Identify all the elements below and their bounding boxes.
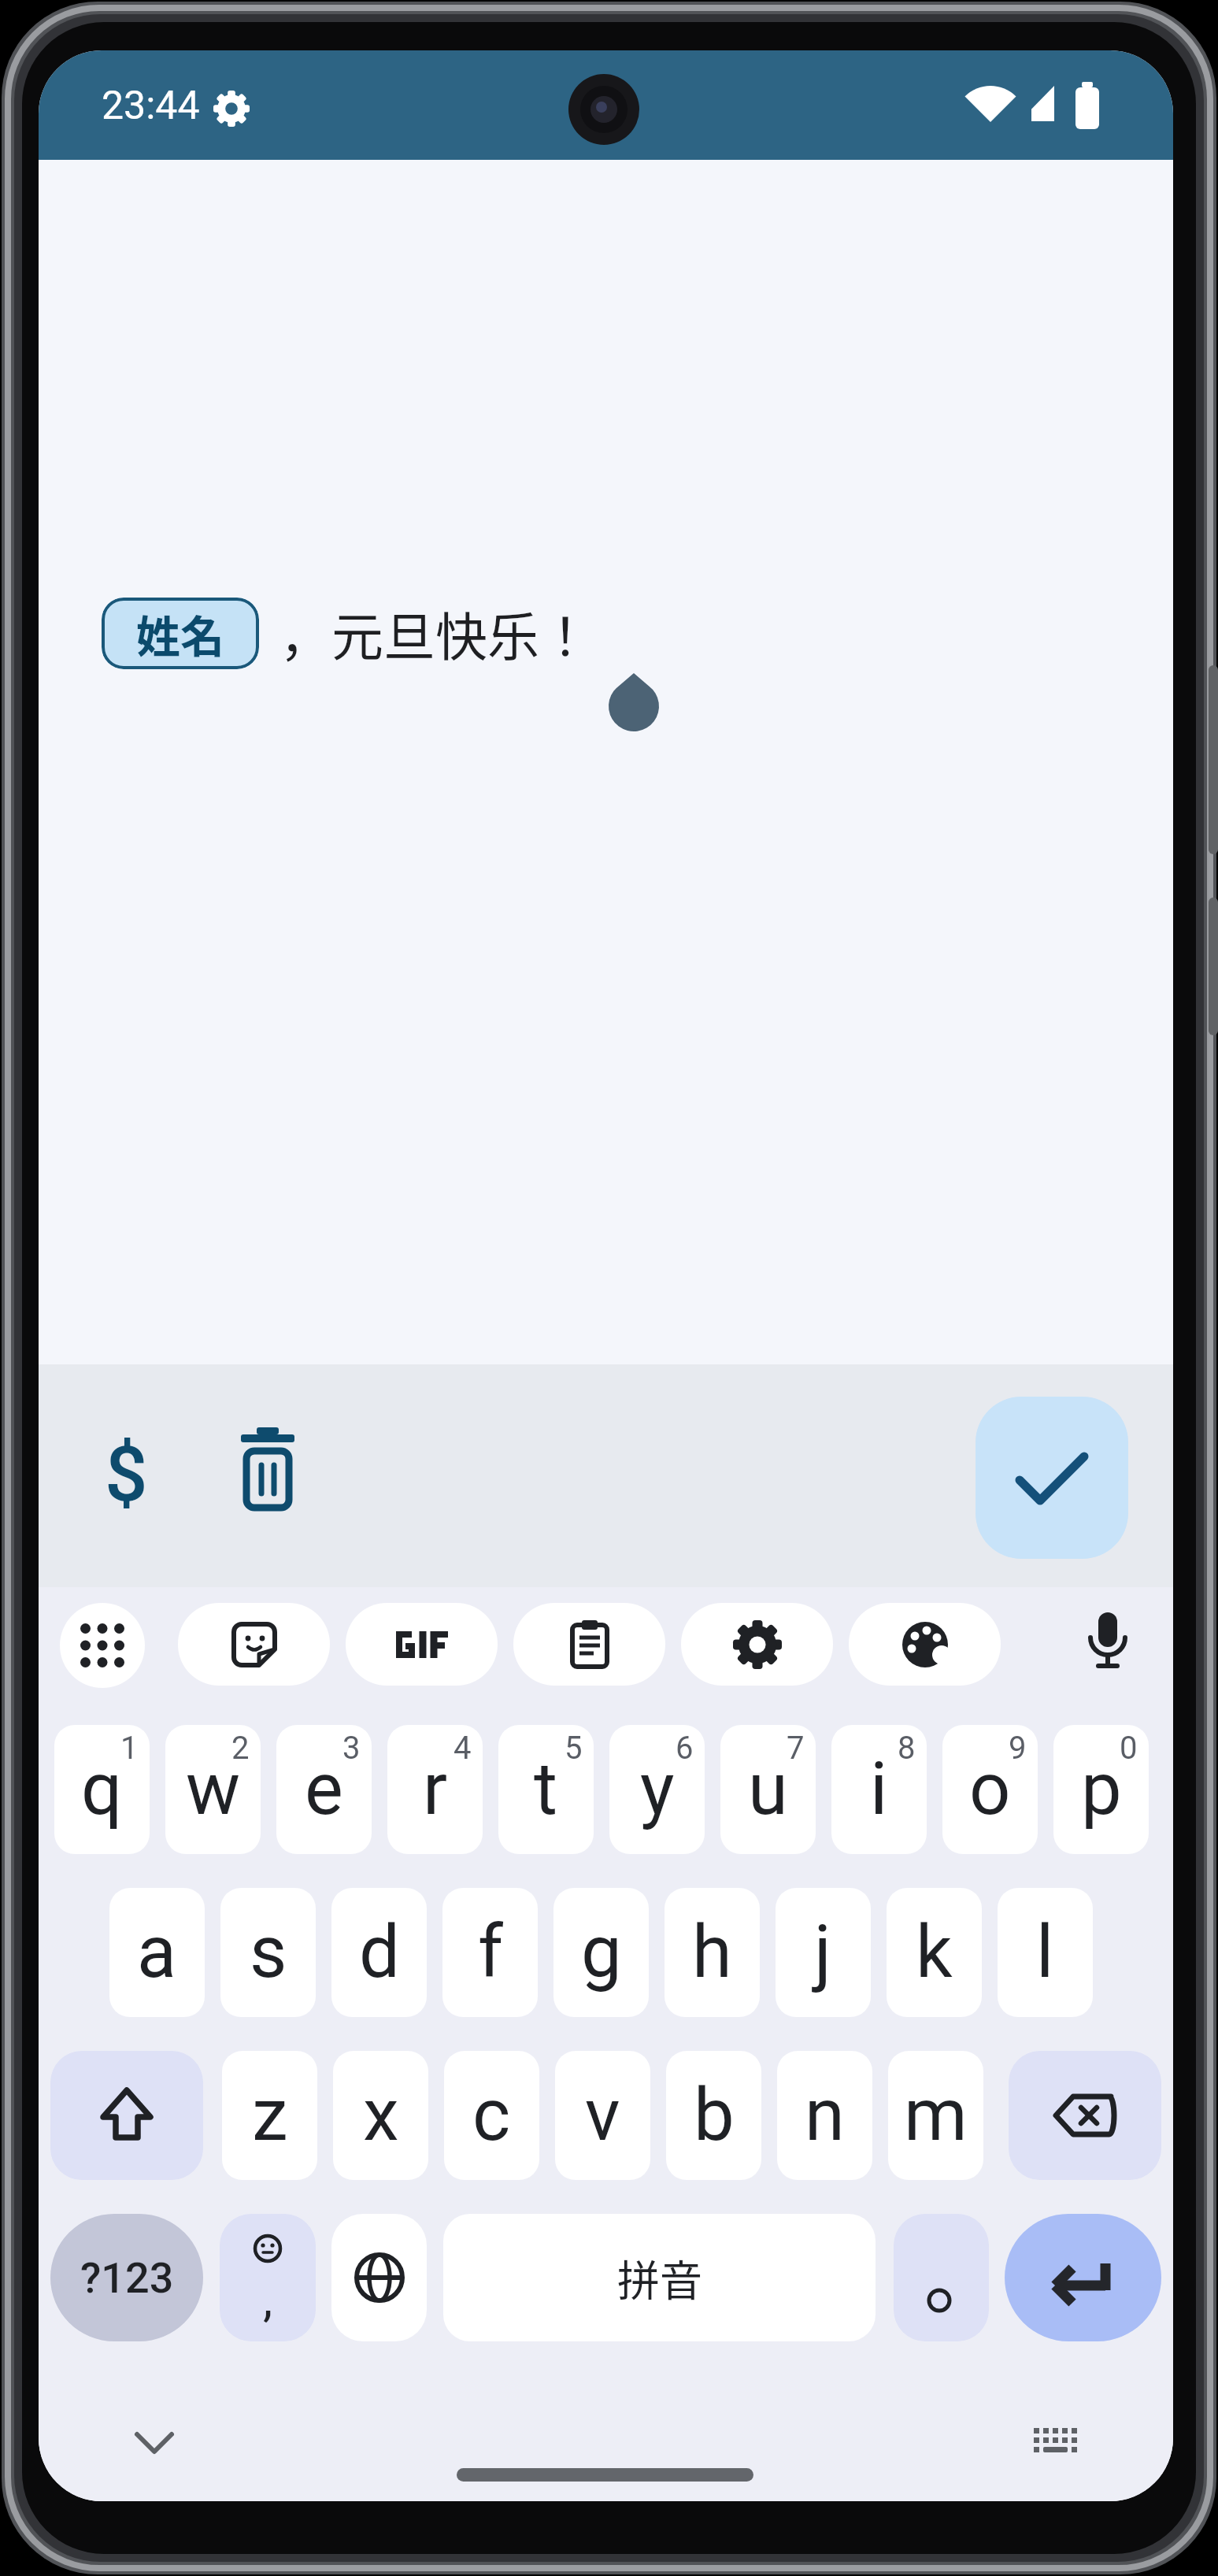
button[interactable]: h [665, 1888, 760, 2017]
staticText: b [694, 2073, 735, 2158]
button[interactable]: x [333, 2051, 428, 2180]
button[interactable] [224, 1427, 311, 1522]
staticText: , [263, 2271, 273, 2328]
staticText: m [904, 2073, 968, 2158]
button[interactable]: j [776, 1888, 871, 2017]
staticText: 拼音 [617, 2247, 702, 2308]
staticText: o [969, 1747, 1011, 1832]
staticText: 3 [342, 1730, 361, 1767]
staticText: x [363, 2073, 399, 2158]
button[interactable]: w [165, 1725, 261, 1854]
button[interactable] [1005, 2214, 1161, 2341]
button[interactable]: i [831, 1725, 927, 1854]
button[interactable]: a [109, 1888, 205, 2017]
staticText: 9 [1009, 1730, 1027, 1767]
button[interactable]: c [444, 2051, 539, 2180]
staticText: w [186, 1747, 241, 1832]
button[interactable]: d [331, 1888, 427, 2017]
staticText: f [478, 1910, 503, 1995]
button[interactable]: q [54, 1725, 150, 1854]
button[interactable] [121, 2414, 187, 2471]
button[interactable]: 姓名 [102, 598, 259, 669]
button[interactable]: s [220, 1888, 316, 2017]
staticText: v [585, 2073, 620, 2158]
staticText: ，元旦快乐！ [280, 595, 591, 671]
button[interactable]: u [720, 1725, 816, 1854]
button[interactable]: b [666, 2051, 761, 2180]
button[interactable] [346, 1603, 498, 1686]
staticText: h [692, 1910, 732, 1995]
staticText: 5 [565, 1730, 583, 1767]
staticText: d [359, 1910, 400, 1995]
button[interactable]: l [998, 1888, 1093, 2017]
button[interactable] [178, 1603, 330, 1686]
button[interactable]: e [276, 1725, 372, 1854]
button[interactable]: k [887, 1888, 982, 2017]
staticText: y [640, 1747, 675, 1832]
button[interactable]: m [888, 2051, 983, 2180]
button[interactable] [894, 2214, 989, 2341]
staticText: 4 [454, 1730, 472, 1767]
staticText: z [252, 2073, 288, 2158]
staticText: k [916, 1910, 953, 1995]
staticText: r [423, 1747, 448, 1832]
staticText: 0 [1120, 1730, 1138, 1767]
button[interactable] [60, 1603, 145, 1688]
button[interactable] [849, 1603, 1001, 1686]
staticText: s [250, 1910, 287, 1995]
staticText: t [534, 1747, 558, 1832]
staticText: n [805, 2073, 845, 2158]
button[interactable]: r [387, 1725, 483, 1854]
staticText: j [814, 1910, 832, 1995]
staticText: p [1081, 1747, 1122, 1832]
button[interactable]: o [942, 1725, 1038, 1854]
staticText: ?123 [80, 2253, 174, 2303]
button[interactable] [976, 1397, 1128, 1559]
button[interactable] [513, 1603, 665, 1686]
staticText: 姓名 [136, 601, 224, 665]
button[interactable]: z [222, 2051, 317, 2180]
button[interactable]: g [553, 1888, 649, 2017]
staticText: 7 [787, 1730, 805, 1767]
staticText: 6 [676, 1730, 694, 1767]
button[interactable] [1009, 2051, 1161, 2180]
button[interactable]: $ [87, 1423, 165, 1526]
button[interactable]: n [777, 2051, 872, 2180]
staticText: i [870, 1747, 888, 1832]
staticText: e [305, 1747, 343, 1832]
staticText: a [137, 1910, 177, 1995]
button[interactable] [331, 2214, 427, 2341]
staticText: 23:44 [102, 83, 200, 129]
staticText: $ [105, 1430, 148, 1519]
staticText: 2 [231, 1730, 250, 1767]
button[interactable] [50, 2051, 203, 2180]
staticText: c [472, 2073, 511, 2158]
button[interactable]: v [555, 2051, 650, 2180]
button[interactable]: 拼音 [443, 2214, 876, 2341]
button[interactable]: ?123 [50, 2214, 203, 2341]
staticText: 1 [120, 1730, 139, 1767]
staticText: g [581, 1910, 622, 1995]
button[interactable]: p [1053, 1725, 1149, 1854]
staticText: 8 [898, 1730, 916, 1767]
button[interactable]: y [609, 1725, 705, 1854]
button[interactable]: t [498, 1725, 594, 1854]
button[interactable]: , [220, 2214, 316, 2341]
staticText: q [81, 1747, 123, 1832]
button[interactable] [1079, 1606, 1136, 1685]
button[interactable] [681, 1603, 833, 1686]
staticText: u [748, 1747, 788, 1832]
button[interactable]: f [442, 1888, 538, 2017]
staticText: l [1036, 1910, 1054, 1995]
button[interactable] [1023, 2414, 1089, 2471]
